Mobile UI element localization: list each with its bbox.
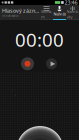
button[interactable]: Nahrávky [66,5,79,20]
staticText: Seznam [41,9,52,19]
staticText: 00:00 [15,27,64,52]
staticText: Nahrát [53,11,65,17]
staticText: Hlasový záznamník [2,7,40,14]
button[interactable]: Seznam [40,5,53,20]
button[interactable]: Play [44,57,58,71]
staticText: nenahrává se [2,14,19,18]
button[interactable]: Nahrát [53,5,66,20]
staticText: 23:46 [64,0,77,6]
staticText: Nahrávky [66,9,78,19]
button[interactable]: Record [20,57,34,71]
